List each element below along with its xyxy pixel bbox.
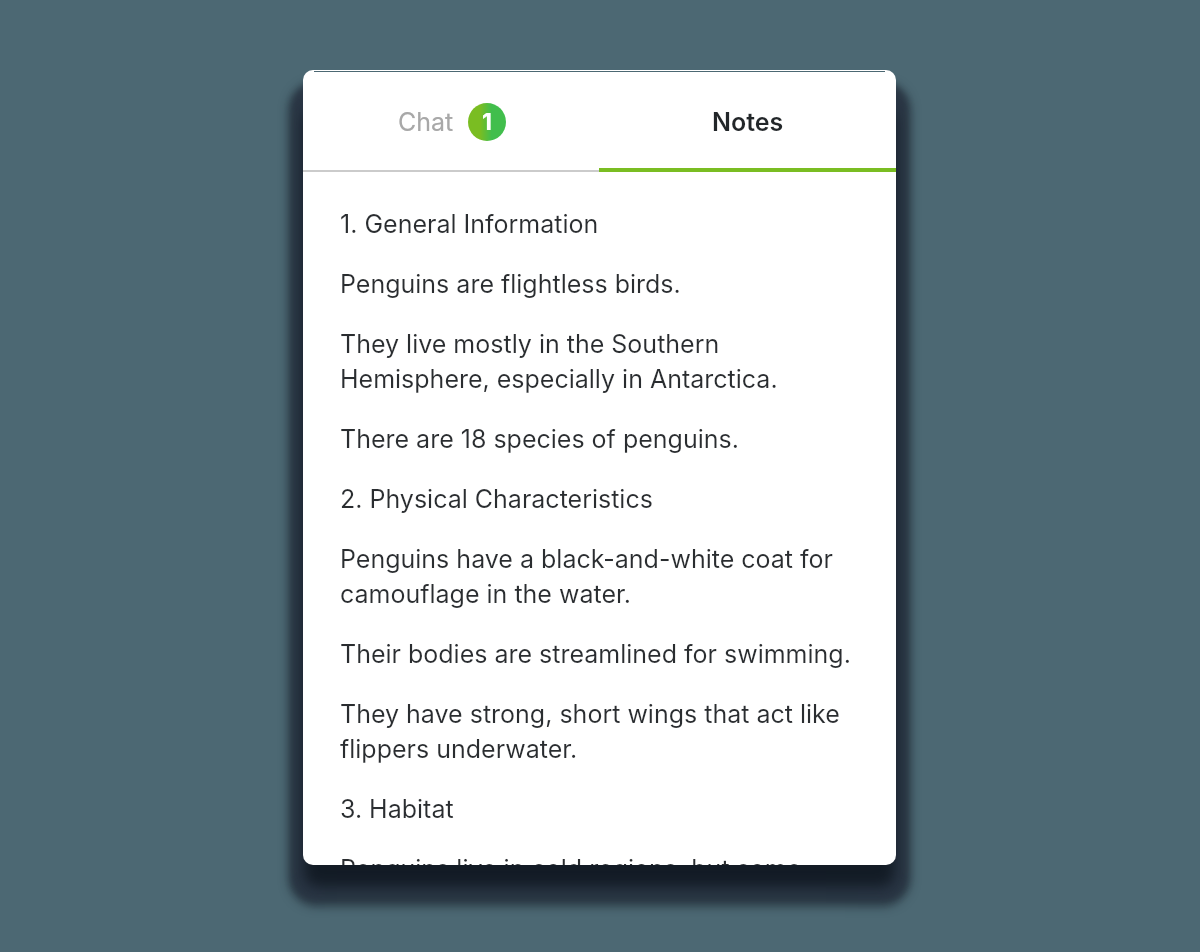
staticText: Chat [398,107,454,137]
button[interactable]: Notes tab, selected [599,71,896,173]
staticText: Hemisphere, especially in Antarctica. [340,364,778,394]
staticText: Notes [712,107,784,137]
staticText: Penguins are flightless birds. [340,269,681,299]
staticText: 2. Physical Characteristics [340,484,653,514]
staticText: They have strong, short wings that act l… [340,699,840,729]
staticText: camouflage in the water. [340,579,632,609]
other: 1 unread chat message [468,103,506,141]
staticText: They live mostly in the Southern [340,329,720,359]
staticText: Penguins live in cold regions, but some [340,854,802,865]
staticText: 1 [482,108,492,136]
staticText: Their bodies are streamlined for swimmin… [340,639,851,669]
staticText: Penguins have a black-and-white coat for [340,544,833,574]
staticText: flippers underwater. [340,734,578,764]
button[interactable]: Chat tab, 1 unread [303,71,599,173]
staticText: There are 18 species of penguins. [340,424,739,454]
staticText: 3. Habitat [340,794,454,824]
staticText: 1. General Information [340,209,599,239]
